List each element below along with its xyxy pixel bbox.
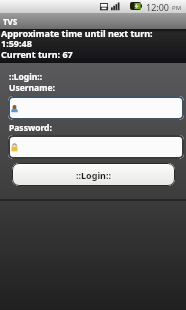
staticText: 1:59:48 [1, 37, 32, 49]
staticText: Username: [9, 82, 55, 94]
staticText: Password: [9, 122, 52, 134]
staticText: TVS [3, 16, 18, 27]
staticText: 12:00 [146, 1, 170, 13]
staticText: Current turn: 67 [1, 48, 73, 60]
staticText: Approximate time until next turn: [1, 27, 153, 39]
button[interactable]: ::Login:: [12, 163, 175, 186]
staticText: PM [172, 4, 182, 12]
button[interactable]: Password [8, 135, 184, 159]
staticText: ::Login:: [76, 169, 112, 181]
staticText: ::Login:: [9, 71, 43, 83]
button[interactable]: Username [8, 96, 184, 120]
